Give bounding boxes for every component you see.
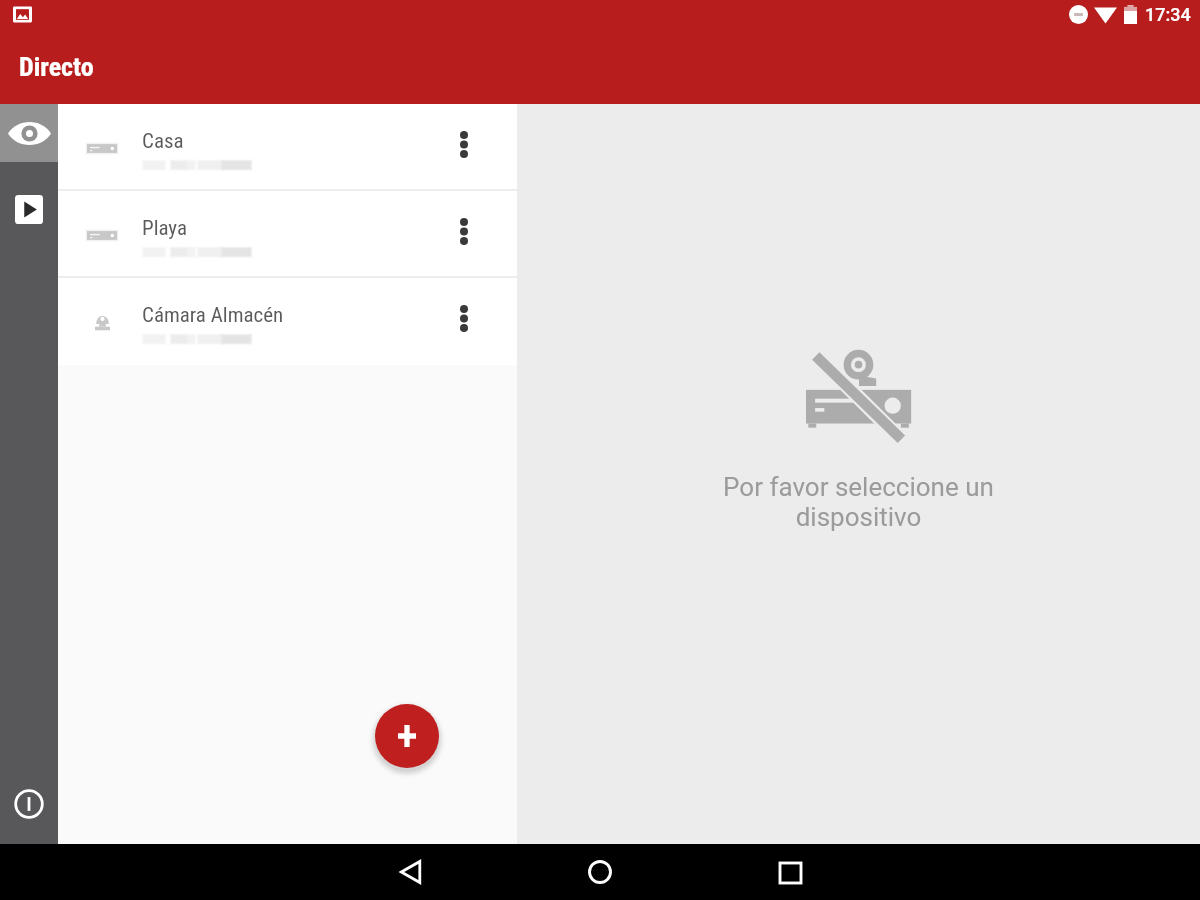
button[interactable]: Playback [0, 180, 58, 238]
button[interactable]: Casa [58, 104, 517, 191]
button[interactable]: Add device [375, 704, 439, 768]
staticText: Por favor seleccione un dispositivo [723, 472, 994, 532]
button[interactable]: Back [387, 848, 435, 896]
button[interactable]: Playa [58, 191, 517, 278]
button[interactable]: More options [438, 296, 490, 340]
button[interactable]: Live view [0, 104, 58, 162]
staticText: Casa [142, 129, 184, 154]
button[interactable]: Info [0, 764, 58, 844]
staticText: Playa [142, 216, 188, 241]
button[interactable]: Cámara Almacén [58, 278, 517, 365]
staticText: 17:34 [1145, 4, 1191, 25]
button[interactable]: Recents [766, 849, 814, 897]
button[interactable]: More options [438, 209, 490, 253]
staticText: Directo [19, 52, 94, 82]
button[interactable]: More options [438, 122, 490, 166]
button[interactable]: Home [576, 848, 624, 896]
staticText: Cámara Almacén [142, 303, 284, 328]
